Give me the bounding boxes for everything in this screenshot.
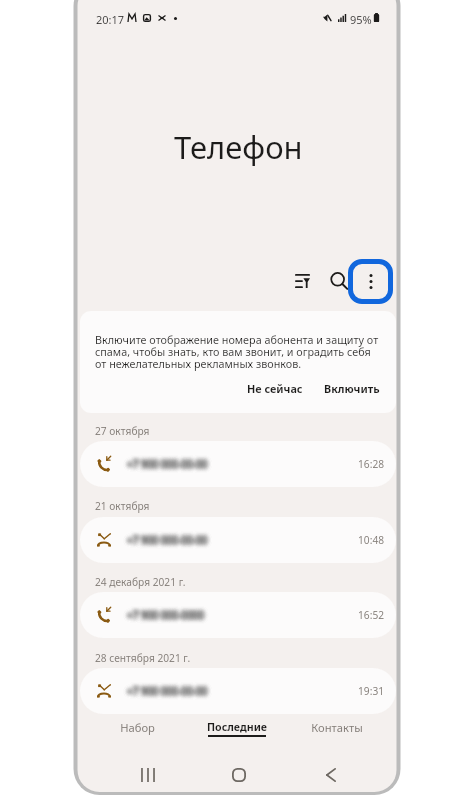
button[interactable]: Back [318, 762, 343, 787]
staticText: 19:31 [358, 684, 385, 698]
staticText: Телефон [174, 126, 303, 168]
staticText: 95% [350, 12, 372, 27]
staticText: +7 900 000-00-00 [127, 684, 208, 698]
staticText: Набор [120, 720, 155, 735]
button[interactable]: Набор [88, 709, 187, 747]
staticText: 24 декабря 2021 г. [95, 575, 186, 589]
staticText: 21 октября [95, 499, 150, 513]
staticText: Последние [207, 720, 267, 734]
staticText: +7 900 000-00-00 [127, 533, 208, 547]
staticText: Включить [324, 381, 380, 396]
button[interactable]: Включить [316, 375, 388, 401]
staticText: 28 сентября 2021 г. [95, 651, 191, 665]
button[interactable]: Контакты [287, 709, 387, 747]
button[interactable]: Home [226, 762, 251, 787]
button[interactable]: Последние [187, 709, 287, 747]
staticText: 16:28 [358, 457, 385, 471]
staticText: +7 900 000-00-00 [127, 533, 208, 547]
button[interactable]: +7 900 000-0000 [80, 592, 396, 638]
staticText: 16:52 [358, 608, 385, 622]
staticText: +7 900 000-0000 [127, 608, 205, 622]
button[interactable]: +7 900 000-00-00 [80, 517, 396, 563]
staticText: 27 октября [95, 424, 150, 438]
button[interactable]: Search [321, 263, 355, 297]
staticText: +7 900 000-00-00 [127, 457, 208, 471]
staticText: +7 900 000-0000 [127, 608, 205, 622]
staticText: 10:48 [358, 533, 385, 547]
staticText: +7 900 000-00-00 [127, 533, 208, 547]
staticText: +7 900 000-00-00 [127, 684, 208, 698]
button[interactable]: Sort [285, 264, 319, 298]
button[interactable]: More options [348, 259, 393, 304]
staticText: +7 900 000-00-00 [127, 457, 208, 471]
button[interactable]: +7 900 000-00-00 [80, 668, 396, 714]
button[interactable]: +7 900 000-00-00 [80, 441, 396, 487]
staticText: +7 900 000-0000 [127, 608, 205, 622]
button[interactable]: Включите отображение номера абонента и з… [80, 311, 396, 413]
staticText: Контакты [311, 720, 363, 735]
button[interactable]: Не сейчас [239, 375, 311, 401]
staticText: +7 900 000-00-00 [127, 684, 208, 698]
staticText: Не сейчас [247, 381, 303, 396]
staticText: 20:17 [96, 12, 125, 27]
button[interactable]: Recent apps [135, 762, 160, 787]
staticText: +7 900 000-00-00 [127, 457, 208, 471]
staticText: Включите отображение номера абонента и з… [95, 332, 383, 371]
